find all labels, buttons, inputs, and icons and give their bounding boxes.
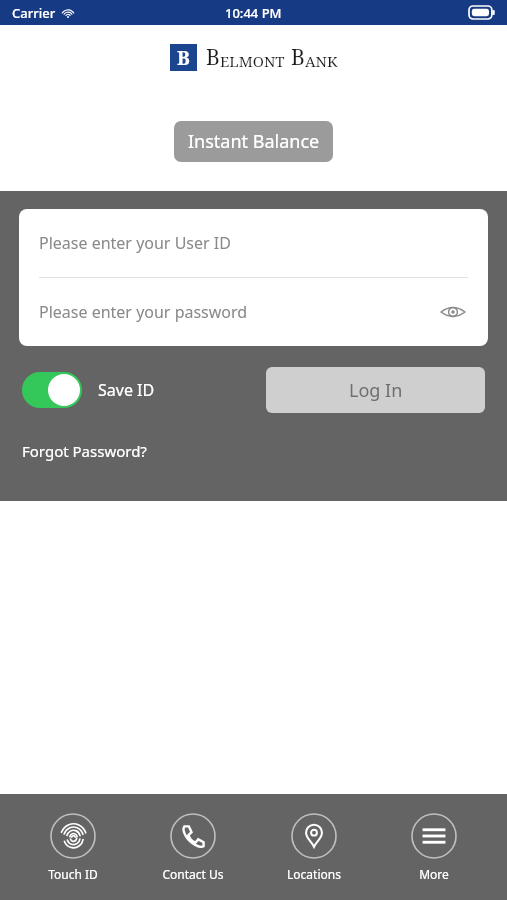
button[interactable]: Save ID [22,372,155,408]
button[interactable]: Show password [436,295,470,329]
staticText: Instant Balance [188,129,320,154]
button[interactable]: Please enter your password [19,278,488,346]
button[interactable]: Touch ID [25,809,121,886]
staticText: More [419,866,449,882]
staticText: Please enter your User ID [39,232,231,254]
button[interactable]: Locations [266,809,362,886]
staticText: Save ID [98,379,155,401]
staticText: B [206,43,220,72]
button[interactable]: Instant Balance [174,121,333,162]
staticText: B [177,45,190,71]
staticText: 10:44 PM [225,4,282,22]
staticText: Forgot Password? [22,441,147,461]
staticText: Contact Us [162,866,224,882]
staticText: Please enter your password [39,301,248,323]
staticText: Locations [287,866,341,882]
staticText: ANK [305,51,338,71]
button[interactable]: Please enter your User ID [19,209,488,277]
staticText: ELMONT [220,51,285,71]
button[interactable]: Log In [266,367,485,413]
staticText: Carrier [12,4,56,22]
button[interactable]: Forgot Password? [22,441,147,461]
staticText: Log In [349,378,403,403]
staticText: B [291,43,305,72]
button[interactable]: More [386,809,482,886]
button[interactable]: Contact Us [145,809,241,886]
staticText: Touch ID [48,866,98,882]
